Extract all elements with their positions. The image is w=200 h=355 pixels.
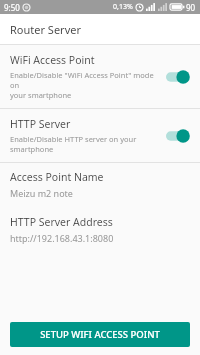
staticText: SETUP WIFI ACCESS POINT — [40, 328, 160, 341]
staticText: 9:50 — [4, 2, 20, 13]
button[interactable]: HTTP Server Address — [0, 208, 200, 247]
staticText: Enable/Disable HTTP server on your smart… — [10, 134, 137, 154]
button[interactable]: SETUP WIFI ACCESS POINT — [10, 322, 190, 347]
staticText: HTTP Server — [10, 117, 71, 131]
button[interactable]: HTTP Server — [0, 109, 200, 162]
staticText: 90 — [186, 2, 196, 13]
staticText: Enable/Disable "WiFi Access Point" mode … — [10, 70, 162, 100]
button[interactable]: Access Point Name — [0, 163, 200, 202]
staticText: WiFi Access Point — [10, 53, 95, 67]
staticText: Meizu m2 note — [10, 187, 73, 199]
staticText: Access Point Name — [10, 170, 104, 184]
button[interactable]: WiFi Access Point — [0, 45, 200, 108]
staticText: Router Server — [10, 22, 81, 37]
button[interactable]: Toggle — [166, 128, 192, 144]
staticText: HTTP Server Address — [10, 215, 113, 229]
staticText: 0,13% — [113, 2, 133, 12]
staticText: http://192.168.43.1:8080 — [10, 232, 114, 244]
button[interactable]: Toggle — [166, 69, 192, 85]
